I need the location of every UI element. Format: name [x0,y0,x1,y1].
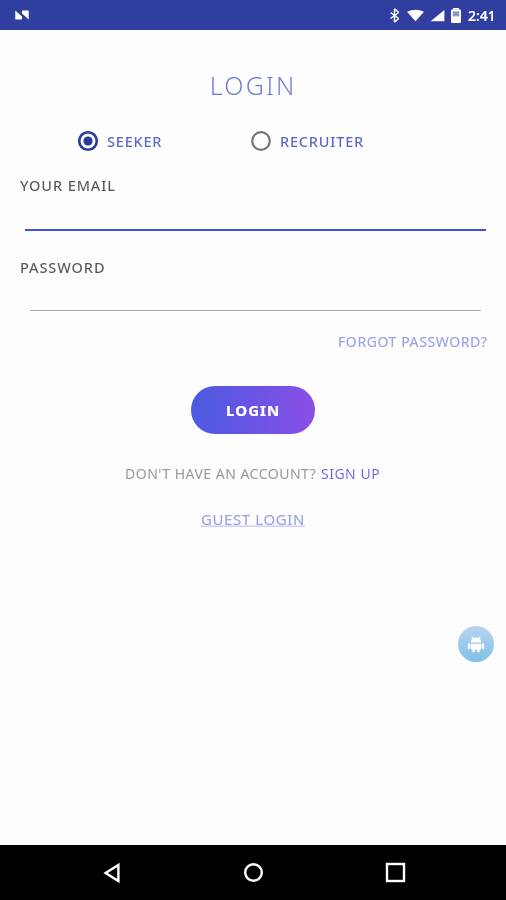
staticText: PASSWORD [20,257,106,277]
button[interactable]: Home [223,845,283,900]
staticText: SEEKER [107,131,163,151]
button[interactable]: GUEST LOGIN [197,507,309,531]
button[interactable]: Recent apps [365,845,425,900]
staticText: 2:41 [468,6,496,25]
staticText: LOGIN [0,68,506,102]
staticText: GUEST LOGIN [201,509,305,529]
button[interactable]: RECRUITER [251,131,365,151]
button[interactable]: LOGIN [191,386,315,434]
staticText: YOUR EMAIL [20,175,116,195]
button[interactable]: FORGOT PASSWORD? [338,330,506,353]
button[interactable]: SEEKER [78,131,163,151]
button[interactable]: Android assistant [458,626,494,662]
button[interactable]: Back [82,845,142,900]
staticText: RECRUITER [280,131,365,151]
staticText: LOGIN [226,400,281,420]
button[interactable]: SIGN UP [321,464,381,483]
staticText: FORGOT PASSWORD? [338,332,488,351]
staticText: SIGN UP [321,464,381,483]
staticText: DON'T HAVE AN ACCOUNT? [125,464,321,483]
